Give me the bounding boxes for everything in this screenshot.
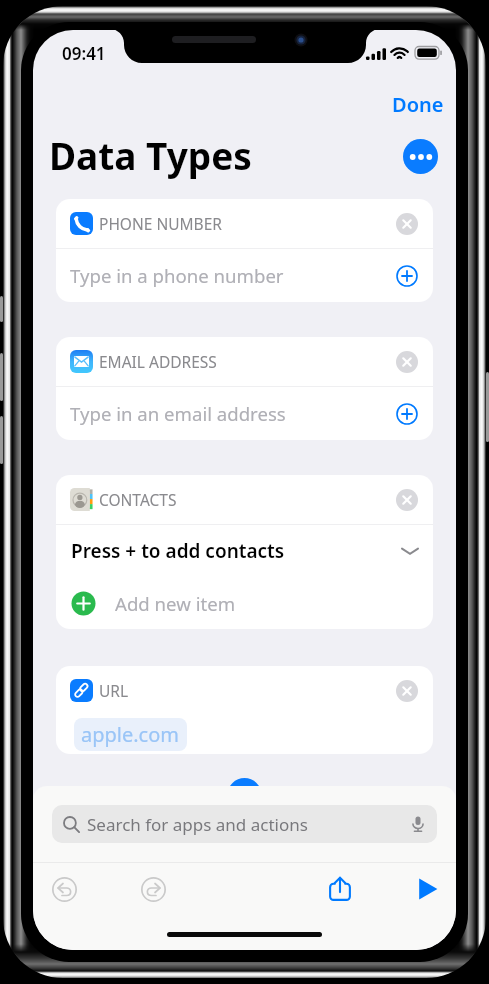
button[interactable]: Remove PHONE NUMBER xyxy=(395,212,419,236)
staticText: Type in an email address xyxy=(70,401,286,426)
button[interactable]: Type in an email address xyxy=(70,387,419,440)
button[interactable]: Undo xyxy=(49,874,79,904)
staticText: Search for apps and actions xyxy=(87,813,308,836)
staticText: Press + to add contacts xyxy=(71,538,285,564)
button[interactable]: Remove CONTACTS xyxy=(395,488,419,512)
button[interactable]: Add new item xyxy=(71,577,419,629)
other: Add xyxy=(395,264,419,288)
staticText: URL xyxy=(99,680,129,701)
other: Voice search xyxy=(409,815,427,833)
button[interactable]: Done xyxy=(387,88,449,121)
button[interactable]: Run xyxy=(410,872,444,906)
button[interactable]: Share xyxy=(323,872,357,906)
button[interactable]: Redo xyxy=(138,874,168,904)
button[interactable]: More options xyxy=(403,139,438,174)
staticText: Add new item xyxy=(115,591,236,616)
staticText: EMAIL ADDRESS xyxy=(99,351,217,372)
button[interactable]: Press + to add contacts xyxy=(71,525,419,577)
button[interactable]: apple.com xyxy=(74,715,419,754)
button[interactable]: Type in a phone number xyxy=(70,249,419,302)
other: Add xyxy=(395,402,419,426)
button[interactable]: Search for apps and actions xyxy=(52,805,437,843)
staticText: apple.com xyxy=(81,721,180,748)
button[interactable]: Remove URL xyxy=(395,679,419,703)
staticText: CONTACTS xyxy=(99,489,177,510)
staticText: PHONE NUMBER xyxy=(99,213,222,234)
staticText: 09:41 xyxy=(62,42,106,64)
button[interactable]: Remove EMAIL ADDRESS xyxy=(395,350,419,374)
staticText: Done xyxy=(392,91,444,118)
staticText: Data Types xyxy=(49,130,252,180)
staticText: Type in a phone number xyxy=(70,263,284,288)
